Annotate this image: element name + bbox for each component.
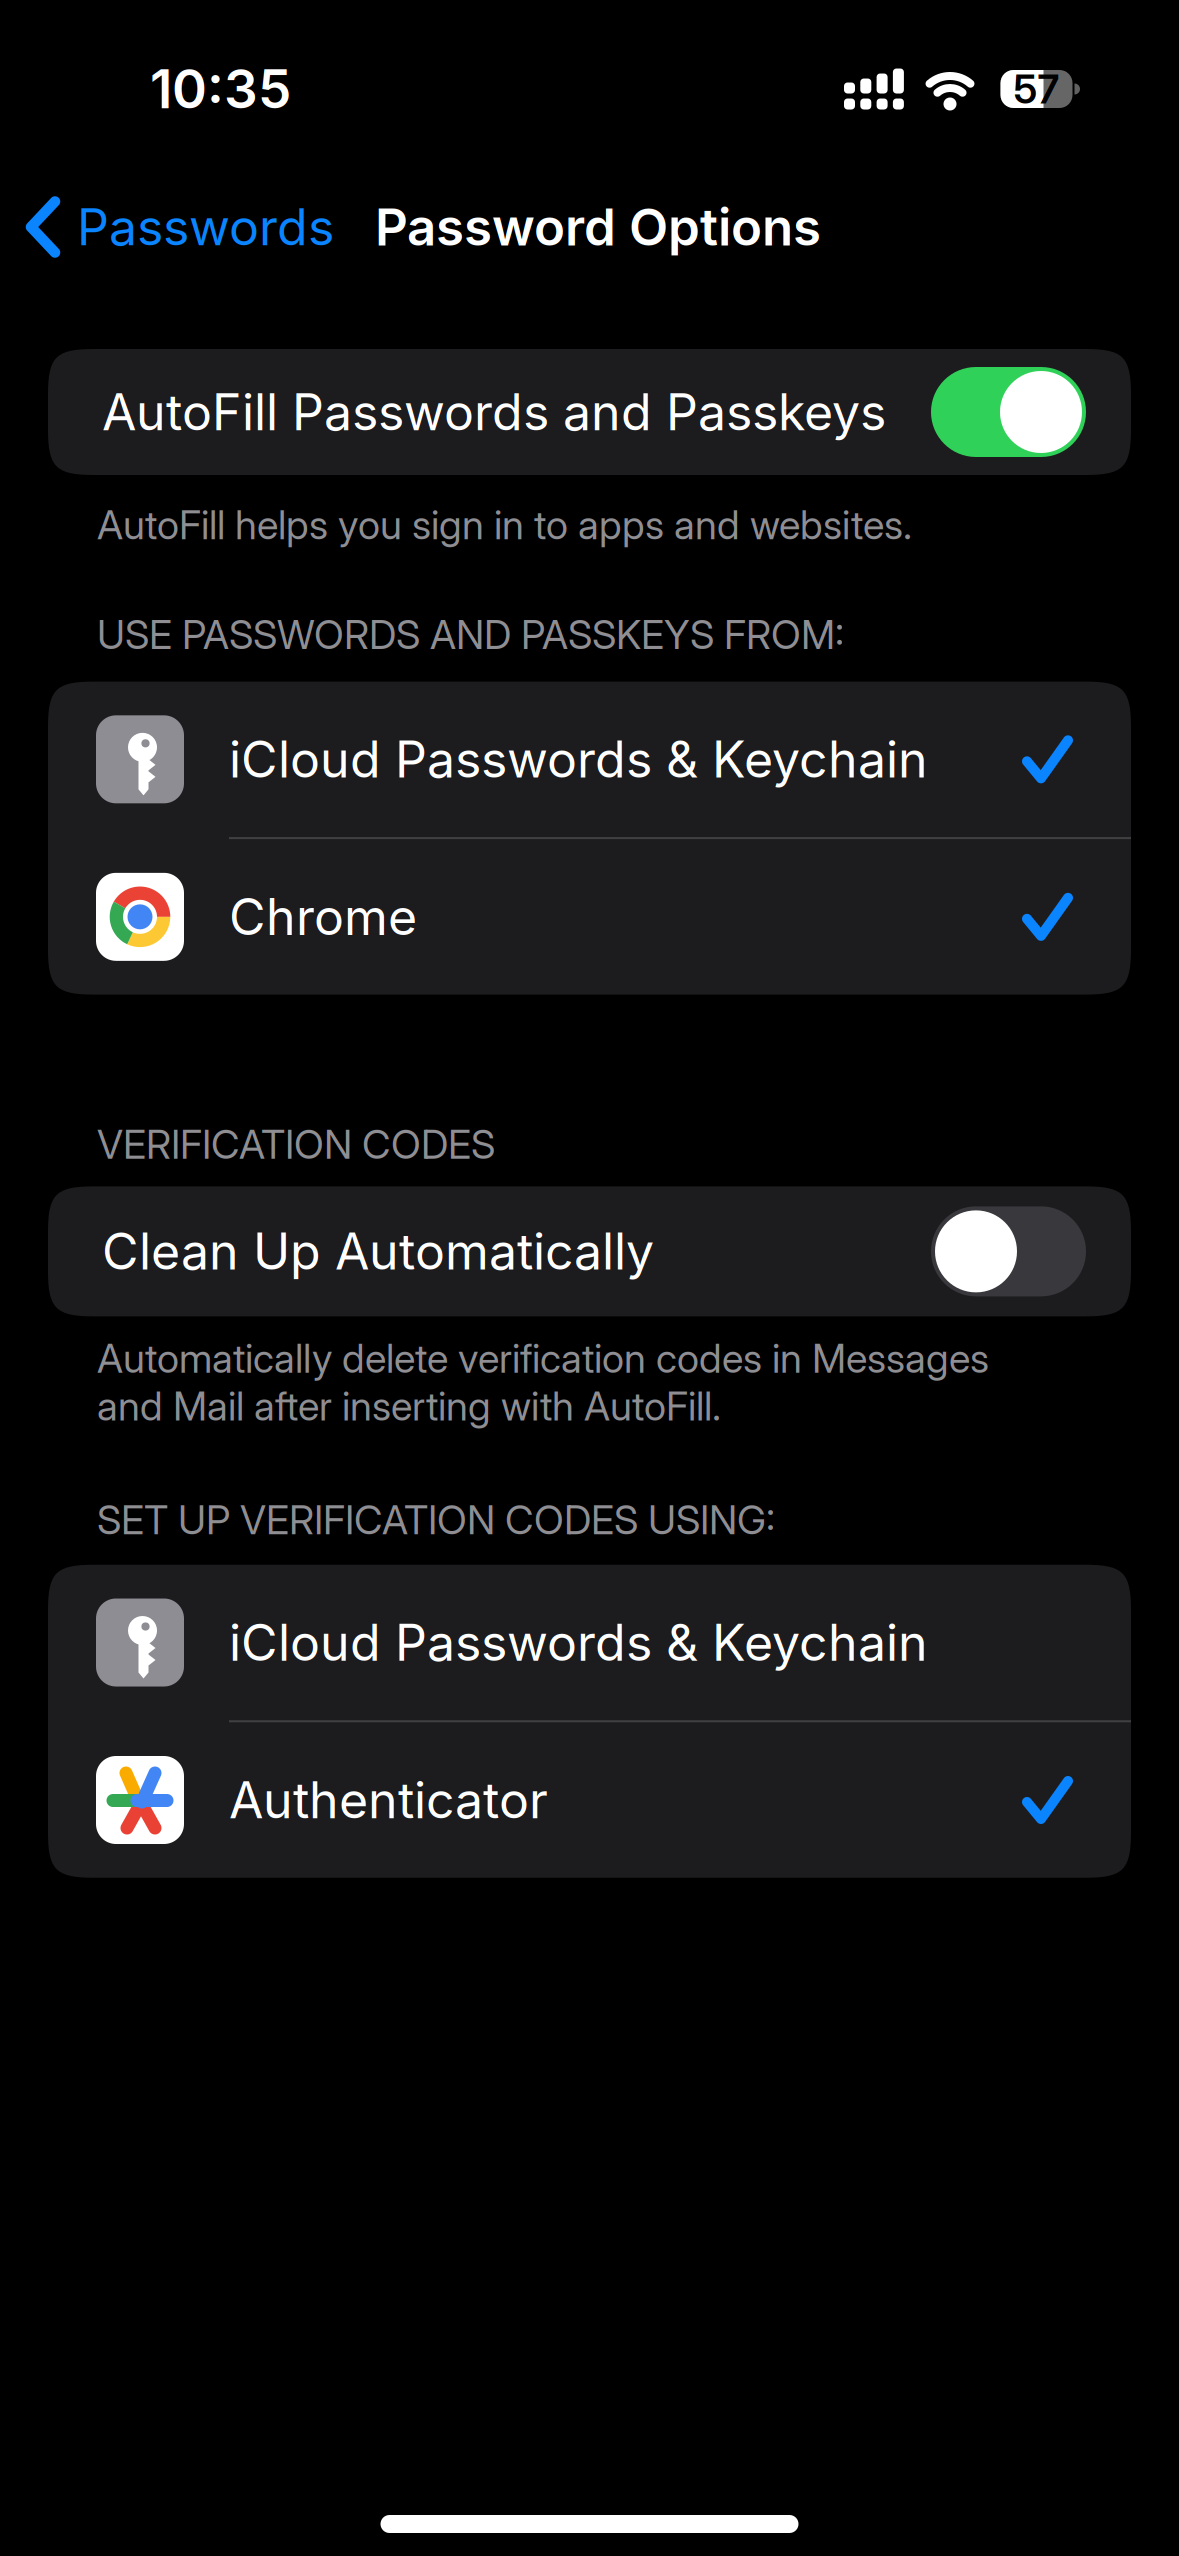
staticText: 10:35 (150, 57, 291, 121)
staticText: Automatically delete verification codes … (97, 1334, 989, 1430)
button[interactable]: iCloud Passwords & Keychain (48, 682, 1131, 837)
staticText: iCloud Passwords & Keychain (229, 729, 928, 790)
staticText: VERIFICATION CODES (97, 1121, 495, 1168)
button[interactable]: Chrome (48, 839, 1131, 995)
staticText: Clean Up Automatically (102, 1221, 654, 1282)
staticText: 57 (1013, 65, 1059, 113)
staticText: Password Options (375, 196, 821, 258)
staticText: AutoFill helps you sign in to apps and w… (97, 501, 912, 549)
staticText: Chrome (229, 887, 417, 947)
staticText: Authenticator (229, 1770, 548, 1830)
button[interactable]: iCloud Passwords & Keychain (48, 1565, 1131, 1720)
button[interactable]: Back (0, 196, 334, 257)
button[interactable]: Clean Up Automatically (48, 1186, 1131, 1316)
button[interactable]: AutoFill Passwords and Passkeys (48, 349, 1131, 475)
staticText: AutoFill Passwords and Passkeys (102, 382, 886, 442)
staticText: USE PASSWORDS AND PASSKEYS FROM: (97, 611, 844, 659)
staticText: iCloud Passwords & Keychain (229, 1612, 928, 1673)
staticText: Passwords (77, 197, 334, 257)
staticText: SET UP VERIFICATION CODES USING: (97, 1496, 775, 1544)
button[interactable]: Authenticator (48, 1722, 1131, 1878)
